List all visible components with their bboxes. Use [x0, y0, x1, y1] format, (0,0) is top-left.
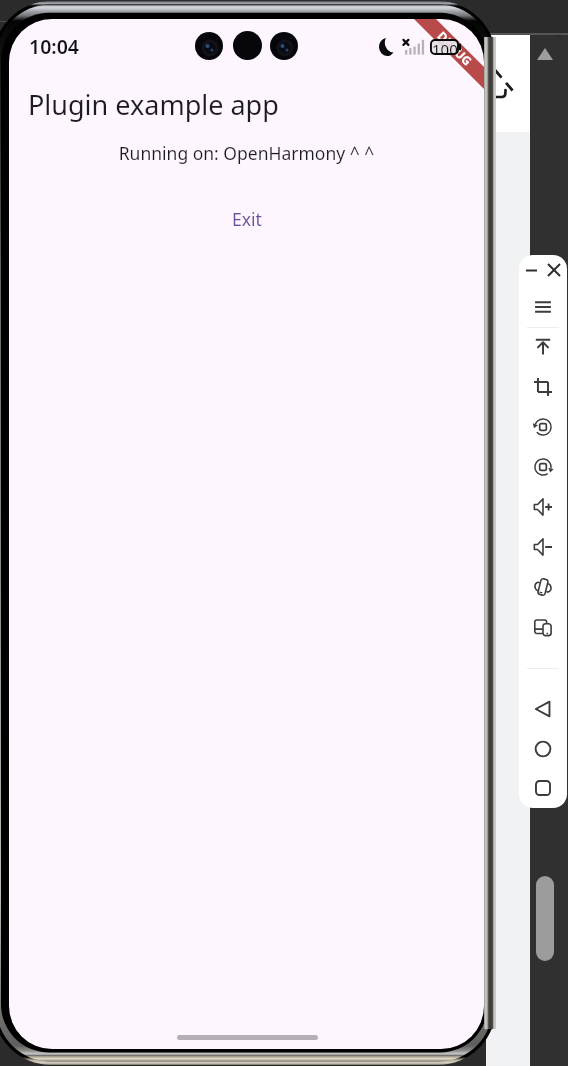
- button[interactable]: Fold device: [523, 571, 563, 603]
- staticText: Running on: OpenHarmony ^ ^: [9, 141, 484, 165]
- button[interactable]: Close: [543, 258, 564, 282]
- staticText: Exit: [232, 207, 262, 231]
- button[interactable]: Menu: [523, 291, 563, 323]
- button[interactable]: Power: [523, 331, 563, 363]
- button[interactable]: Volume down: [523, 531, 563, 563]
- button[interactable]: Rotate right: [523, 451, 563, 483]
- staticText: 100: [432, 39, 458, 55]
- button[interactable]: Rotate left: [523, 411, 563, 443]
- button[interactable]: Volume up: [523, 491, 563, 523]
- button[interactable]: Exit: [218, 202, 276, 236]
- button[interactable]: Back: [523, 693, 563, 725]
- button[interactable]: Recents: [523, 772, 563, 804]
- staticText: 10:04: [29, 33, 79, 60]
- staticText: DEBUG: [434, 27, 476, 69]
- button[interactable]: Device frame: [523, 611, 563, 643]
- button[interactable]: Home: [523, 733, 563, 765]
- button[interactable]: Minimize: [521, 258, 541, 282]
- staticText: Plugin example app: [28, 86, 279, 123]
- button[interactable]: Screenshot: [523, 371, 563, 403]
